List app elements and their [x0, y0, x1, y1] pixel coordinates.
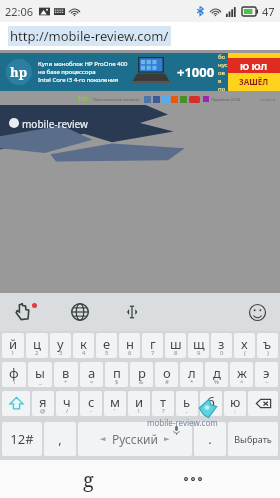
- staticText: hp: [10, 63, 28, 81]
- button[interactable]: в: [54, 362, 78, 387]
- staticText: н: [126, 335, 134, 353]
- staticText: .: [208, 430, 212, 448]
- button[interactable]: ◄: [78, 422, 192, 456]
- button[interactable]: с: [80, 391, 102, 416]
- button[interactable]: е: [96, 333, 117, 358]
- staticText: э: [263, 364, 270, 382]
- button[interactable]: Move cursor: [119, 299, 145, 325]
- button[interactable]: Shift: [2, 391, 30, 416]
- staticText: 1: [11, 349, 15, 357]
- staticText: mobile-review.com: [147, 417, 218, 428]
- staticText: 9: [197, 349, 201, 357]
- button[interactable]: т: [152, 391, 174, 416]
- button[interactable]: ж: [230, 362, 253, 387]
- button[interactable]: ъ: [257, 333, 278, 358]
- staticText: :: [234, 407, 236, 415]
- staticText: +: [64, 378, 68, 386]
- button[interactable]: 12#: [2, 422, 42, 456]
- button[interactable]: з: [211, 333, 232, 358]
- staticText: ф: [9, 364, 19, 382]
- button[interactable]: ,: [44, 422, 76, 456]
- button[interactable]: Backspace: [248, 391, 278, 416]
- button[interactable]: у: [50, 333, 71, 358]
- staticText: 2: [35, 349, 39, 357]
- staticText: g: [83, 466, 94, 493]
- staticText: в: [62, 364, 70, 382]
- staticText: к: [80, 335, 87, 353]
- button[interactable]: а: [80, 362, 103, 387]
- staticText: б: [207, 393, 215, 411]
- button[interactable]: Change language: [67, 299, 93, 325]
- staticText: 22:06: [5, 4, 34, 19]
- staticText: ): [267, 349, 269, 357]
- staticText: а: [88, 364, 96, 382]
- staticText: Intel Core i3 4-го поколения: [38, 76, 119, 84]
- staticText: ,: [186, 407, 188, 415]
- button[interactable]: щ: [188, 333, 209, 358]
- button[interactable]: ч: [56, 391, 78, 416]
- staticText: Ю ЮЛ: [240, 60, 268, 72]
- button[interactable]: YouTube: [189, 96, 200, 103]
- staticText: \: [13, 378, 16, 386]
- staticText: ,: [58, 430, 62, 448]
- button[interactable]: э: [255, 362, 278, 387]
- staticText: 47: [262, 4, 275, 19]
- staticText: ы: [35, 364, 45, 382]
- staticText: Персональный магазин: [93, 97, 140, 102]
- button[interactable]: б: [200, 391, 222, 416]
- button[interactable]: к: [73, 333, 94, 358]
- button[interactable]: http://mobile-review.com/: [0, 22, 280, 50]
- button[interactable]: Menu: [175, 461, 211, 497]
- button[interactable]: ш: [165, 333, 186, 358]
- button[interactable]: м: [104, 391, 126, 416]
- staticText: -: [90, 407, 92, 415]
- button[interactable]: п: [105, 362, 128, 387]
- button[interactable]: й: [2, 333, 24, 358]
- staticText: htc: [78, 94, 90, 104]
- staticText: ъ: [263, 335, 272, 353]
- staticText: ш: [170, 335, 182, 353]
- button[interactable]: г: [142, 333, 163, 358]
- button[interactable]: Emoji: [244, 299, 270, 325]
- button[interactable]: Выбрать: [228, 422, 278, 456]
- staticText: на базе процессора: [38, 68, 96, 76]
- staticText: 8: [174, 349, 178, 357]
- button[interactable]: и: [128, 391, 150, 416]
- staticText: mobile-review: [22, 117, 88, 131]
- button[interactable]: л: [180, 362, 203, 387]
- button[interactable]: Home: [70, 461, 106, 497]
- staticText: ◄: [100, 435, 106, 443]
- staticText: ;: [210, 407, 212, 415]
- staticText: Выбрать: [234, 433, 272, 445]
- staticText: +1000: [177, 63, 215, 81]
- button[interactable]: н: [119, 333, 140, 358]
- button[interactable]: ь: [176, 391, 198, 416]
- button[interactable]: д: [205, 362, 228, 387]
- button[interactable]: Handwriting input: [10, 299, 36, 325]
- staticText: я: [39, 393, 47, 411]
- staticText: с: [88, 393, 95, 411]
- staticText: %: [214, 378, 219, 386]
- button[interactable]: р: [130, 362, 153, 387]
- staticText: ': [114, 407, 116, 415]
- button[interactable]: ы: [28, 362, 52, 387]
- staticText: ц: [33, 335, 41, 353]
- button[interactable]: ю: [224, 391, 246, 416]
- button[interactable]: о: [155, 362, 178, 387]
- staticText: ЗАШЁЛ: [239, 76, 269, 87]
- button[interactable]: ф: [2, 362, 26, 387]
- staticText: щ: [193, 335, 205, 353]
- button[interactable]: я: [32, 391, 54, 416]
- button[interactable]: ц: [26, 333, 48, 358]
- button[interactable]: hp: [0, 53, 280, 91]
- staticText: д: [213, 364, 221, 382]
- button[interactable]: х: [234, 333, 255, 358]
- staticText: й: [9, 335, 18, 353]
- button[interactable]: .: [194, 422, 226, 456]
- staticText: 12#: [10, 430, 34, 448]
